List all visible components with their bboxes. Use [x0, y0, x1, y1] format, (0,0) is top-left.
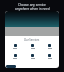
button[interactable]: [41, 54, 58, 59]
button[interactable]: [6, 54, 24, 59]
button[interactable]: [6, 65, 16, 68]
staticText: Choose any service: [18, 3, 46, 7]
button[interactable]: [24, 54, 41, 59]
button[interactable]: [24, 44, 41, 49]
staticText: Our Services: [24, 38, 40, 42]
button[interactable]: [41, 44, 58, 49]
button[interactable]: [6, 44, 24, 49]
staticText: anywhere when in need: [15, 7, 50, 11]
